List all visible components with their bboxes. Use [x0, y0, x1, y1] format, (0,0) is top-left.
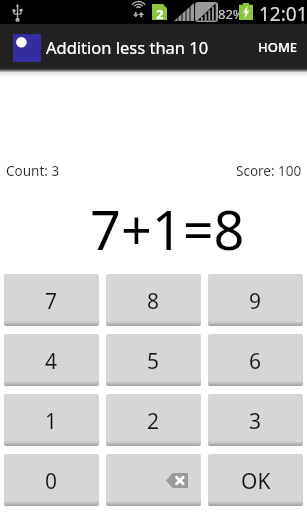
staticText: Count: 3: [6, 162, 60, 180]
button[interactable]: 4: [4, 334, 99, 386]
staticText: 2: [147, 407, 160, 436]
staticText: Score: 100: [236, 162, 302, 180]
staticText: 0: [45, 467, 58, 496]
staticText: OK: [241, 467, 271, 496]
button[interactable]: 7: [4, 274, 99, 326]
staticText: 6: [249, 347, 262, 376]
button[interactable]: 9: [208, 274, 303, 326]
staticText: 7: [45, 287, 58, 316]
staticText: 12:01: [259, 1, 307, 25]
button[interactable]: 8: [106, 274, 201, 326]
staticText: 5: [147, 347, 160, 376]
staticText: 8: [147, 287, 160, 316]
button[interactable]: Backspace: [106, 454, 201, 506]
button[interactable]: 5: [106, 334, 201, 386]
button[interactable]: 0: [4, 454, 99, 506]
button[interactable]: 2: [106, 394, 201, 446]
button[interactable]: OK: [208, 454, 303, 506]
staticText: 3: [249, 407, 262, 436]
staticText: HOME: [258, 38, 298, 56]
button[interactable]: 3: [208, 394, 303, 446]
staticText: 82%: [218, 5, 244, 23]
staticText: 4: [45, 347, 58, 376]
staticText: 7+1=8: [90, 192, 245, 266]
button[interactable]: HOME: [246, 24, 307, 69]
staticText: 9: [249, 287, 262, 316]
staticText: Addition less than 10: [46, 36, 209, 58]
staticText: 1: [45, 407, 58, 436]
staticText: 2: [156, 5, 164, 21]
button[interactable]: 1: [4, 394, 99, 446]
button[interactable]: 6: [208, 334, 303, 386]
